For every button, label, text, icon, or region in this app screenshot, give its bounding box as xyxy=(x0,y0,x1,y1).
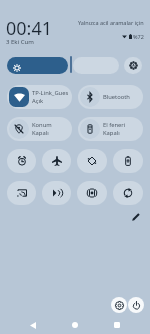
button[interactable]: Bluetooth xyxy=(78,85,143,109)
staticText: 00:41 xyxy=(6,16,53,41)
staticText: Kapalı xyxy=(103,129,120,137)
button[interactable]: Battery saver xyxy=(113,149,143,173)
button[interactable]: Auto brightness xyxy=(124,57,142,74)
staticText: TP-Link_Gues xyxy=(32,89,69,97)
button[interactable]: Power xyxy=(128,297,144,313)
button[interactable]: Back xyxy=(26,318,40,332)
staticText: El feneri xyxy=(103,121,126,129)
staticText: Konum xyxy=(32,121,52,129)
staticText: Kapalı xyxy=(32,129,49,137)
staticText: 3 Eki Cum xyxy=(6,38,34,46)
staticText: Bluetooth xyxy=(103,93,130,101)
button[interactable]: Screen record xyxy=(77,181,107,205)
staticText: Açık xyxy=(32,97,44,105)
button[interactable]: Brightness xyxy=(7,57,68,74)
button[interactable]: Alarm xyxy=(7,149,36,173)
button[interactable]: Edit tiles xyxy=(129,210,143,224)
button[interactable]: Settings xyxy=(111,297,127,313)
button[interactable]: Sync xyxy=(113,181,143,205)
button[interactable]: Konum xyxy=(7,117,72,141)
button[interactable]: NFC xyxy=(42,181,71,205)
button[interactable]: TP-Link_Gues xyxy=(7,85,72,109)
button[interactable]: Home xyxy=(68,318,82,332)
staticText: Yalnızca acil aramalar için xyxy=(78,19,144,26)
button[interactable]: Auto rotate xyxy=(77,149,107,173)
button[interactable]: Recents xyxy=(110,318,124,332)
button[interactable]: El feneri xyxy=(78,117,143,141)
button[interactable]: Cast xyxy=(7,181,36,205)
staticText: %72 xyxy=(133,33,144,40)
button[interactable]: Airplane mode xyxy=(42,149,71,173)
